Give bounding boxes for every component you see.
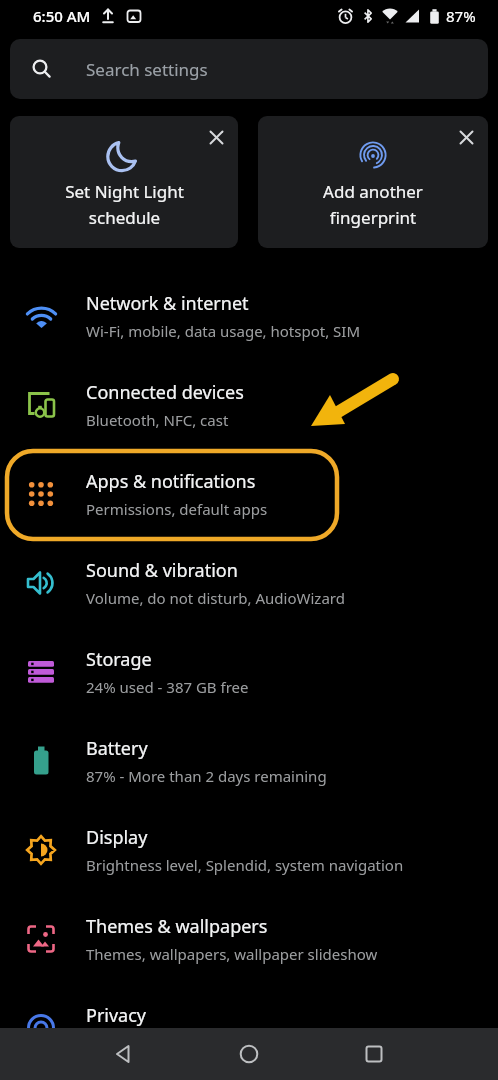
staticText: Privacy bbox=[86, 1003, 147, 1028]
button[interactable]: Search settings bbox=[10, 39, 488, 99]
staticText: Wi-Fi, mobile, data usage, hotspot, SIM bbox=[86, 321, 361, 341]
staticText: Themes, wallpapers, wallpaper slideshow bbox=[86, 944, 378, 964]
staticText: 6:50 AM bbox=[33, 6, 91, 26]
button[interactable]: Apps & notifications bbox=[0, 449, 498, 538]
button[interactable]: Connected devices bbox=[0, 360, 498, 449]
staticText: 24% used - 387 GB free bbox=[86, 677, 249, 697]
button[interactable]: Network & internet bbox=[0, 271, 498, 360]
staticText: Themes & wallpapers bbox=[86, 914, 268, 939]
staticText: Storage bbox=[86, 647, 152, 672]
staticText: Brightness level, Splendid, system navig… bbox=[86, 855, 404, 875]
staticText: Add another fingerprint bbox=[323, 180, 423, 229]
staticText: Display bbox=[86, 825, 148, 850]
button[interactable] bbox=[457, 128, 475, 146]
button[interactable]: Storage bbox=[0, 627, 498, 716]
staticText: Apps & notifications bbox=[86, 469, 256, 494]
staticText: Bluetooth, NFC, cast bbox=[86, 410, 229, 430]
staticText: 87% bbox=[446, 6, 476, 26]
staticText: Connected devices bbox=[86, 380, 244, 405]
staticText: Battery bbox=[86, 736, 148, 761]
button[interactable] bbox=[100, 1030, 148, 1078]
staticText: Set Night Light schedule bbox=[65, 180, 184, 229]
button[interactable]: Display bbox=[0, 805, 498, 894]
button[interactable]: Privacy bbox=[0, 983, 498, 1072]
staticText: Permissions, default apps bbox=[86, 499, 268, 519]
staticText: Permissions, account activity bbox=[86, 1033, 289, 1053]
button[interactable]: Battery bbox=[0, 716, 498, 805]
staticText: Network & internet bbox=[86, 291, 249, 316]
button[interactable]: Set Night Light schedule bbox=[10, 116, 238, 248]
button[interactable] bbox=[350, 1030, 398, 1078]
staticText: 87% - More than 2 days remaining bbox=[86, 766, 327, 786]
staticText: Sound & vibration bbox=[86, 558, 238, 583]
staticText: Search settings bbox=[86, 58, 208, 81]
button[interactable]: Sound & vibration bbox=[0, 538, 498, 627]
button[interactable]: Add another fingerprint bbox=[258, 116, 488, 248]
staticText: Volume, do not disturb, AudioWizard bbox=[86, 588, 345, 608]
button[interactable] bbox=[225, 1030, 273, 1078]
button[interactable] bbox=[207, 128, 225, 146]
button[interactable]: Themes & wallpapers bbox=[0, 894, 498, 983]
